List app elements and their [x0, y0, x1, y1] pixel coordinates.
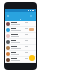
button[interactable]	[5, 21, 36, 27]
button[interactable]	[5, 39, 36, 45]
button[interactable]	[5, 51, 36, 57]
button[interactable]	[5, 33, 36, 39]
button[interactable]	[5, 27, 36, 33]
button[interactable]	[5, 45, 36, 51]
button[interactable]	[5, 57, 36, 63]
button[interactable]: Compose	[29, 55, 35, 61]
